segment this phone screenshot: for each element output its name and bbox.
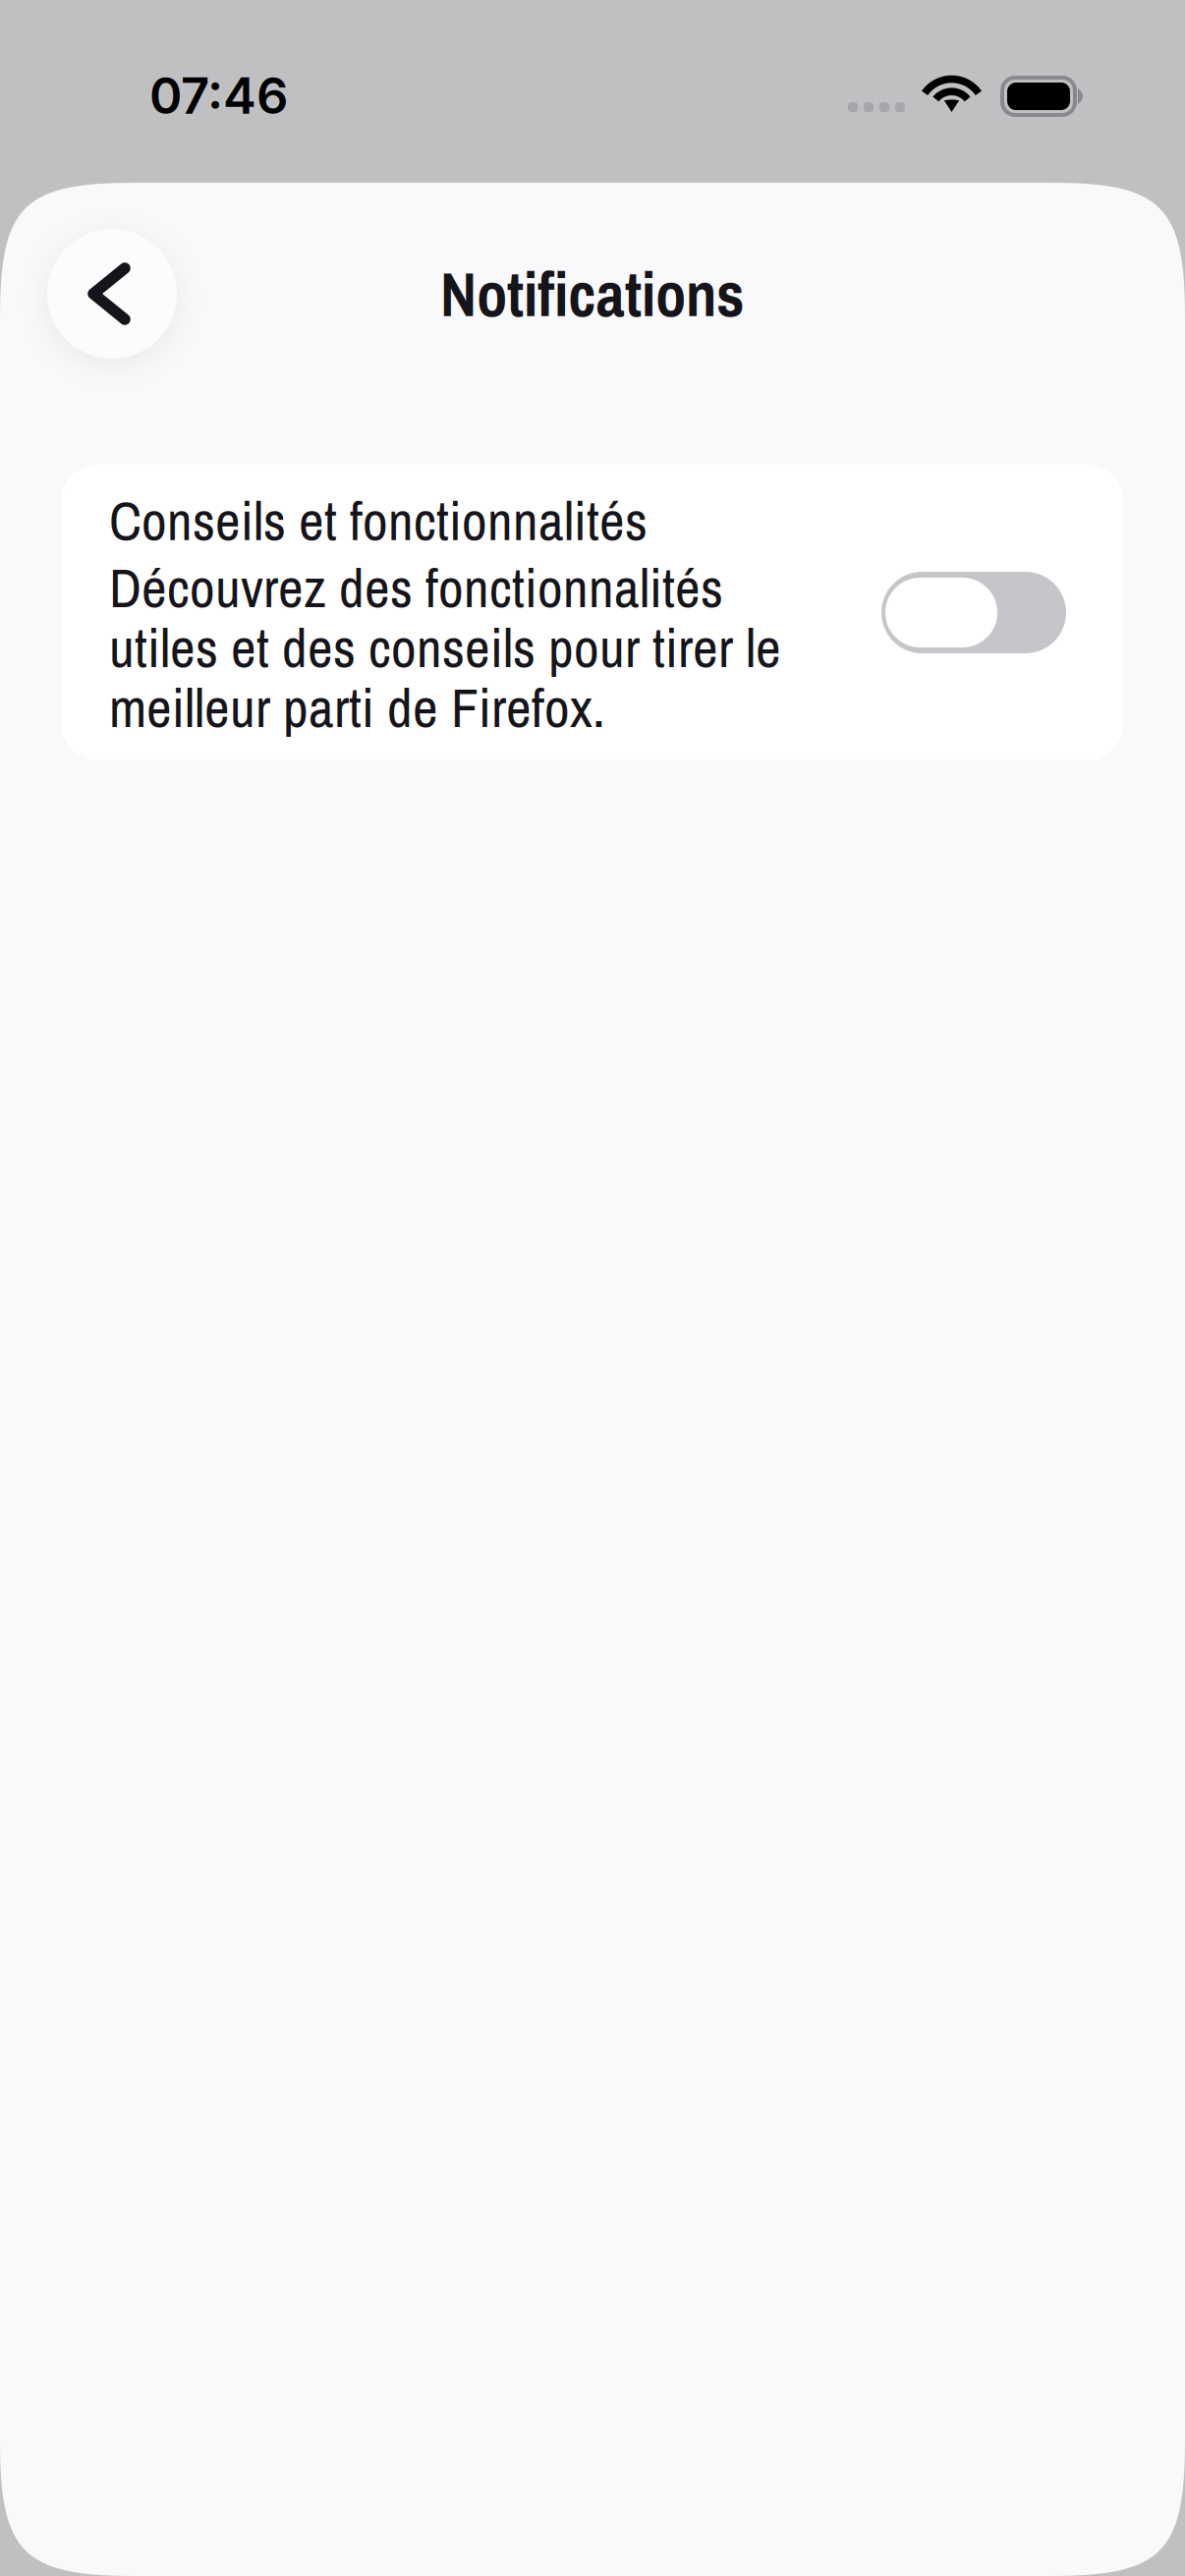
button[interactable]: Back — [47, 229, 177, 359]
staticText: Découvrez des fonctionnalités utiles et … — [109, 557, 781, 737]
staticText: Notifications — [440, 252, 745, 335]
staticText: Conseils et fonctionnalités — [109, 490, 648, 550]
button[interactable]: Conseils et fonctionnalités — [62, 465, 1123, 760]
staticText: 07:46 — [149, 66, 288, 126]
